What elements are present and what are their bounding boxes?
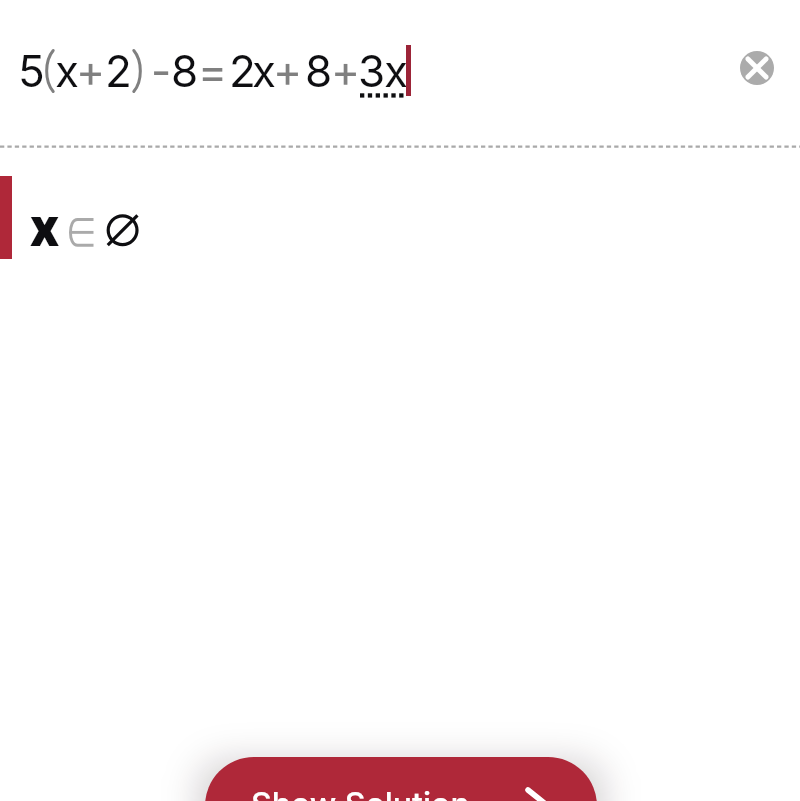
staticText: x — [30, 194, 59, 260]
staticText: = — [198, 44, 228, 97]
staticText: Show Solution — [251, 785, 470, 801]
button[interactable]: Show Solution — [205, 757, 597, 801]
button[interactable]: Clear equation — [740, 51, 774, 85]
staticText: 5 — [18, 44, 45, 97]
button[interactable]: Result: x is an element of the empty set — [0, 176, 800, 259]
staticText: 3 — [358, 44, 386, 97]
staticText: + — [331, 44, 361, 97]
staticText: 8 — [171, 44, 199, 97]
button[interactable]: Equation input — [0, 0, 800, 145]
staticText: + — [76, 44, 106, 97]
staticText: 2 — [105, 44, 132, 97]
staticText: 2 — [229, 44, 256, 97]
staticText: 8 — [305, 44, 333, 97]
staticText: x — [384, 44, 409, 97]
staticText: - — [151, 44, 172, 97]
staticText: + — [273, 44, 303, 97]
staticText: x — [55, 44, 80, 97]
staticText: x — [252, 44, 277, 97]
